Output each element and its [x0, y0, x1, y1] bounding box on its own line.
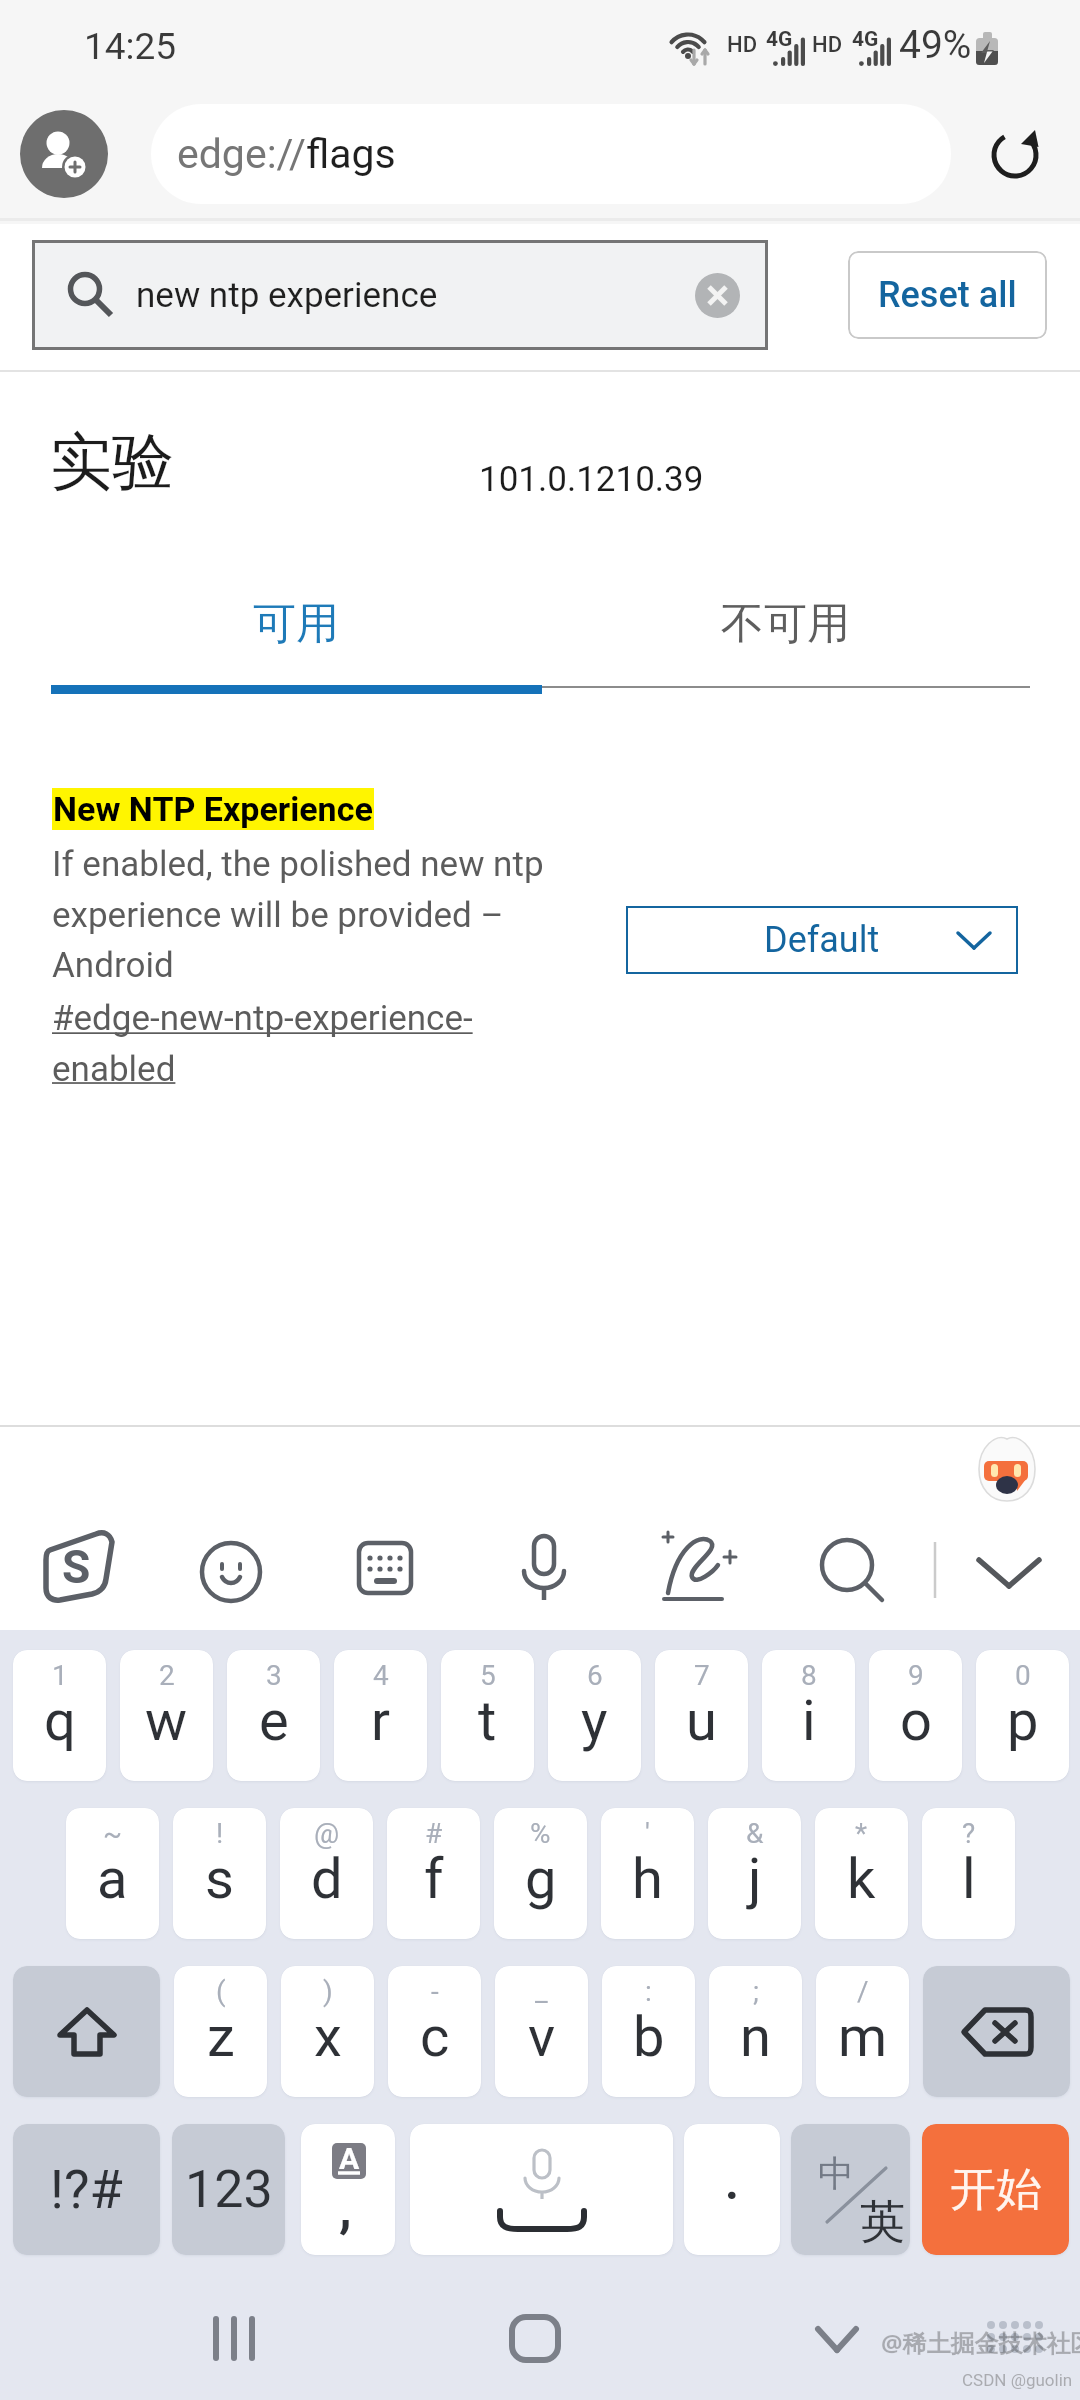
staticText: x [314, 2004, 342, 2070]
staticText: CSDN @guolin [962, 2370, 1073, 2390]
staticText: o [900, 1688, 932, 1754]
staticText: % [530, 1817, 551, 1850]
staticText: 9 [908, 1659, 924, 1692]
staticText: ( [216, 1975, 226, 2008]
staticText: edge:// [177, 130, 306, 178]
button[interactable]: & [708, 1808, 801, 1939]
button[interactable]: 7 [655, 1650, 748, 1781]
button[interactable]: 6 [548, 1650, 641, 1781]
button[interactable]: 4 [334, 1650, 427, 1781]
staticText: t [478, 1688, 497, 1754]
staticText: a [97, 1846, 128, 1912]
button[interactable]: # [387, 1808, 480, 1939]
button[interactable]: Reload [972, 110, 1060, 198]
button[interactable]: . [684, 2124, 780, 2255]
button[interactable]: 5 [441, 1650, 534, 1781]
button[interactable]: 123 [172, 2124, 285, 2255]
staticText: 可用 [253, 597, 339, 651]
button[interactable]: @ [280, 1808, 373, 1939]
staticText: 0 [1015, 1659, 1031, 1692]
staticText: @ [314, 1817, 340, 1850]
staticText: S [62, 1540, 91, 1594]
staticText: f [424, 1846, 444, 1912]
staticText: A [339, 2143, 360, 2176]
button[interactable]: AI assistant [978, 1433, 1036, 1501]
button[interactable]: 不可用 [540, 574, 1030, 674]
button[interactable]: Handwriting [660, 1531, 744, 1605]
staticText: ! [216, 1817, 224, 1850]
button[interactable]: Keyboard layout [357, 1541, 413, 1595]
button[interactable]: _ [495, 1966, 588, 2097]
button[interactable]: 9 [869, 1650, 962, 1781]
staticText: 8 [801, 1659, 817, 1692]
button[interactable]: Home [500, 2306, 570, 2370]
button[interactable]: ( [174, 1966, 267, 2097]
button[interactable]: new ntp experience [32, 240, 768, 350]
button[interactable]: Profile [20, 110, 108, 198]
button[interactable]: Shift [13, 1966, 160, 2097]
button[interactable]: Search [818, 1536, 890, 1608]
staticText: h [632, 1846, 663, 1912]
staticText: 英 [860, 2194, 905, 2251]
staticText: l [962, 1846, 976, 1912]
button[interactable]: Default [626, 906, 1018, 974]
button[interactable]: % [494, 1808, 587, 1939]
button[interactable]: !?# [13, 2124, 160, 2255]
staticText: HD [812, 32, 843, 58]
staticText: * [855, 1817, 868, 1850]
staticText: g [525, 1846, 557, 1912]
button[interactable]: edge:// [151, 104, 951, 204]
button[interactable]: ~ [66, 1808, 159, 1939]
button[interactable]: ! [173, 1808, 266, 1939]
button[interactable]: Space [410, 2124, 673, 2255]
staticText: 123 [185, 2159, 273, 2220]
button[interactable]: ; [709, 1966, 802, 2097]
button[interactable]: * [815, 1808, 908, 1939]
button[interactable]: ) [281, 1966, 374, 2097]
button[interactable]: Hide keyboard [802, 2306, 872, 2370]
staticText: k [847, 1846, 876, 1912]
button[interactable]: / [816, 1966, 909, 2097]
staticText: q [44, 1688, 76, 1754]
button[interactable]: 8 [762, 1650, 855, 1781]
button[interactable]: 0 [976, 1650, 1069, 1781]
staticText: z [207, 2004, 235, 2070]
staticText: _ [535, 1975, 548, 2008]
staticText: / [857, 1975, 869, 2008]
staticText: m [838, 2004, 888, 2070]
button[interactable]: Recent apps [200, 2306, 266, 2370]
button[interactable]: Switch input language [791, 2124, 910, 2255]
staticText: New NTP Experience [53, 789, 373, 829]
button[interactable]: Hide keyboard [972, 1548, 1046, 1596]
button[interactable]: - [388, 1966, 481, 2097]
button[interactable]: ? [922, 1808, 1015, 1939]
button[interactable]: Clear search [695, 273, 740, 318]
staticText: v [528, 2004, 556, 2070]
staticText: ) [323, 1975, 333, 2008]
button[interactable]: Emoji [200, 1541, 262, 1603]
button[interactable]: Voice input [518, 1534, 568, 1604]
staticText: - [431, 1975, 439, 2008]
button[interactable]: Reset all [848, 251, 1047, 339]
staticText: i [802, 1688, 816, 1754]
staticText: 101.0.1210.39 [479, 459, 704, 500]
staticText: #edge-new-ntp-experience- enabled [52, 998, 473, 1089]
staticText: 49% [899, 22, 972, 68]
button[interactable]: ' [601, 1808, 694, 1939]
staticText: ; [753, 1975, 759, 2008]
button[interactable]: : [602, 1966, 695, 2097]
staticText: u [686, 1688, 717, 1754]
staticText: !?# [50, 2158, 123, 2221]
button[interactable]: 可用 [52, 574, 540, 674]
button[interactable]: Sogou input [40, 1526, 118, 1604]
button[interactable]: 1 [13, 1650, 106, 1781]
button[interactable]: Input language [301, 2124, 395, 2255]
staticText: w [145, 1688, 188, 1754]
button[interactable]: Backspace [923, 1966, 1070, 2097]
button[interactable]: 开始 [922, 2124, 1069, 2255]
button[interactable]: 3 [227, 1650, 320, 1781]
staticText: ' [645, 1817, 650, 1850]
staticText: n [740, 2004, 771, 2070]
staticText: 实验 [50, 423, 174, 501]
button[interactable]: 2 [120, 1650, 213, 1781]
